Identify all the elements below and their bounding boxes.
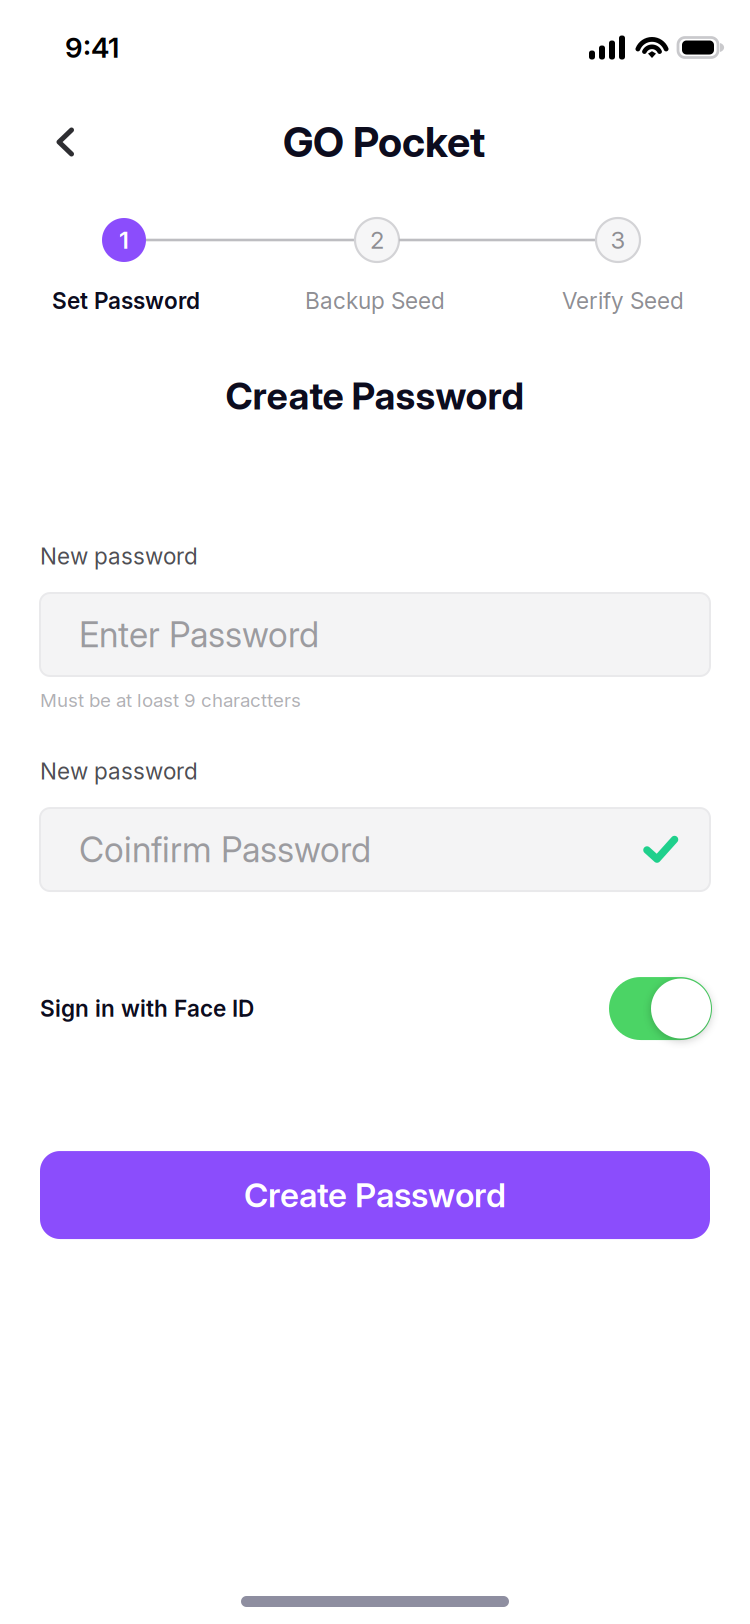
staticText: GO Pocket xyxy=(283,117,485,167)
staticText: Coinfirm Password xyxy=(79,829,371,870)
button[interactable]: Create Password xyxy=(40,1151,710,1239)
staticText: 2 xyxy=(370,225,384,254)
staticText: Backup Seed xyxy=(305,287,445,314)
staticText: 1 xyxy=(119,225,129,254)
staticText: 9:41 xyxy=(65,31,119,64)
staticText: New password xyxy=(40,758,198,785)
staticText: New password xyxy=(40,543,198,570)
staticText: Set Password xyxy=(52,287,200,314)
staticText: Must be at loast 9 charactters xyxy=(40,689,301,712)
staticText: Verify Seed xyxy=(562,287,684,314)
staticText: 3 xyxy=(610,225,625,254)
button[interactable]: Sign in with Face ID xyxy=(609,977,712,1040)
staticText: Enter Password xyxy=(79,614,319,655)
staticText: Create Password xyxy=(244,1175,506,1215)
button[interactable]: Back xyxy=(33,111,97,173)
staticText: Create Password xyxy=(225,373,524,419)
staticText: Sign in with Face ID xyxy=(40,995,254,1022)
